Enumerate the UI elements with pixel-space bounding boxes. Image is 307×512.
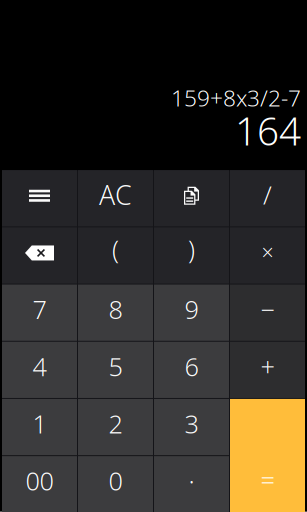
staticText: (	[112, 232, 119, 266]
button[interactable]: /	[230, 170, 305, 226]
staticText: 1	[32, 407, 46, 440]
button[interactable]: +	[230, 342, 305, 398]
button[interactable]: 4	[2, 342, 77, 398]
button[interactable]: Equals	[230, 399, 305, 512]
staticText: 8	[108, 292, 122, 326]
staticText: ·	[188, 464, 194, 497]
staticText: 164	[235, 105, 301, 156]
button[interactable]: (	[78, 227, 153, 283]
button[interactable]: −	[230, 284, 305, 341]
staticText: AC	[99, 177, 132, 212]
button[interactable]: 0	[78, 456, 153, 512]
staticText: 4	[32, 349, 46, 383]
button[interactable]: 5	[78, 342, 153, 398]
button[interactable]: Delete	[2, 227, 77, 283]
button[interactable]: 7	[2, 284, 77, 341]
staticText: 9	[184, 292, 198, 326]
staticText: 00	[25, 464, 53, 497]
staticText: −	[260, 292, 274, 326]
button[interactable]: )	[154, 227, 229, 283]
button[interactable]: 8	[78, 284, 153, 341]
staticText: +	[260, 349, 274, 383]
button[interactable]: 1	[2, 399, 77, 455]
staticText: 159+8x3/2-7	[171, 83, 301, 113]
staticText: 0	[108, 464, 122, 497]
button[interactable]: AC	[78, 170, 153, 226]
staticText: 2	[108, 407, 122, 440]
button[interactable]: 9	[154, 284, 229, 341]
button[interactable]: 2	[78, 399, 153, 455]
staticText: ×	[261, 238, 273, 266]
staticText: =	[260, 463, 274, 496]
button[interactable]: Menu	[2, 170, 77, 226]
staticText: 3	[184, 407, 198, 440]
button[interactable]: Copy	[154, 170, 229, 226]
staticText: 7	[32, 292, 46, 326]
button[interactable]: 3	[154, 399, 229, 455]
button[interactable]: 6	[154, 342, 229, 398]
staticText: 6	[184, 349, 198, 383]
staticText: /	[263, 178, 272, 211]
button[interactable]: ·	[154, 456, 229, 512]
staticText: 5	[108, 349, 122, 383]
button[interactable]: 00	[2, 456, 77, 512]
staticText: )	[188, 232, 195, 266]
button[interactable]: ×	[230, 227, 305, 283]
